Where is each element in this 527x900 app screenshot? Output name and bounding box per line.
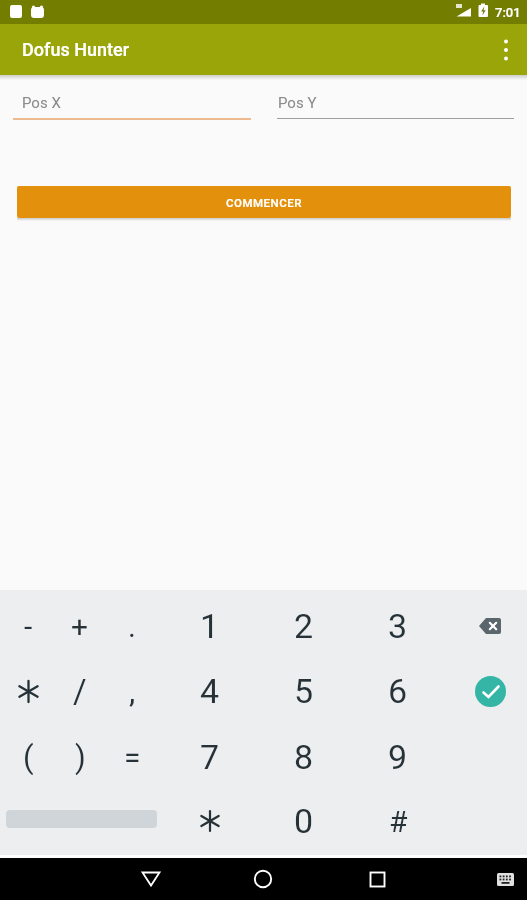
staticText: ) [75, 739, 86, 775]
button[interactable]: ) [54, 725, 106, 789]
button[interactable]: 7 [163, 725, 257, 789]
button[interactable]: / [54, 659, 106, 723]
button[interactable] [453, 594, 527, 658]
button[interactable]: 4 [163, 659, 257, 723]
staticText: , [129, 672, 136, 710]
button[interactable] [453, 659, 527, 723]
button[interactable] [127, 858, 175, 900]
button[interactable]: 1 [163, 594, 257, 658]
staticText: 9 [388, 737, 408, 777]
button[interactable]: . [106, 594, 158, 658]
staticText: Pos Y [278, 94, 317, 112]
button[interactable]: 8 [257, 725, 351, 789]
staticText: 6 [388, 671, 408, 711]
staticText: 7 [200, 737, 220, 777]
staticText: 4 [200, 671, 220, 711]
staticText: 5 [294, 671, 314, 711]
button[interactable]: 2 [257, 594, 351, 658]
button[interactable]: COMMENCER [17, 186, 511, 218]
button[interactable]: - [2, 594, 54, 658]
staticText: 1 [200, 606, 220, 646]
button[interactable]: 3 [351, 594, 445, 658]
staticText: 3 [388, 606, 408, 646]
staticText: + [71, 609, 89, 644]
staticText: ( [23, 739, 34, 775]
button[interactable]: 9 [351, 725, 445, 789]
staticText: 7:01 [495, 5, 521, 20]
button[interactable] [163, 789, 257, 853]
button[interactable] [485, 29, 527, 71]
staticText: COMMENCER [226, 196, 302, 209]
staticText: Pos X [22, 94, 61, 112]
button[interactable]: Pos Y [277, 86, 514, 119]
button[interactable]: ( [2, 725, 54, 789]
staticText: Dofus Hunter [22, 39, 129, 60]
staticText: - [24, 609, 33, 644]
staticText: / [73, 672, 87, 711]
button[interactable]: = [106, 725, 158, 789]
staticText: = [124, 740, 141, 775]
staticText: 0 [294, 801, 314, 841]
staticText: 2 [294, 606, 314, 646]
button[interactable]: 6 [351, 659, 445, 723]
button[interactable] [239, 858, 287, 900]
button[interactable] [2, 659, 54, 723]
button[interactable]: Pos X [13, 86, 251, 120]
staticText: 8 [294, 737, 314, 777]
button[interactable] [483, 858, 527, 900]
staticText: # [389, 804, 408, 839]
button[interactable]: 0 [257, 789, 351, 853]
button[interactable]: 5 [257, 659, 351, 723]
button[interactable] [353, 858, 401, 900]
staticText: . [128, 609, 136, 644]
button[interactable]: , [106, 659, 158, 723]
button[interactable]: + [54, 594, 106, 658]
button[interactable]: # [351, 789, 445, 853]
